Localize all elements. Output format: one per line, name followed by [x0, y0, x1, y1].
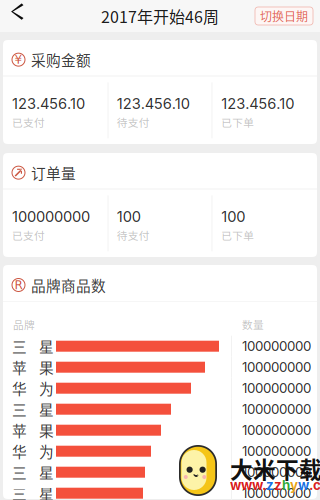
staticText: .com [309, 477, 320, 493]
button[interactable]: 切换日期 [255, 7, 313, 25]
staticText: www. [230, 477, 266, 493]
staticText: 100000000 [242, 359, 311, 375]
staticText: h [282, 477, 290, 493]
staticText: z [266, 477, 274, 493]
staticText: 已下单 [221, 114, 254, 130]
staticText: 星 [39, 462, 54, 483]
staticText: 123.456.10 [117, 95, 190, 112]
staticText: 100 [221, 208, 245, 225]
staticText: 100 [117, 208, 141, 225]
staticText: 采购金额 [31, 49, 91, 70]
staticText: y [290, 477, 298, 493]
staticText: 已支付 [12, 227, 45, 243]
staticText: 100000000 [242, 464, 311, 480]
staticText: 已下单 [221, 227, 254, 243]
staticText: 数量 [242, 317, 264, 332]
staticText: 100000000 [242, 485, 311, 500]
staticText: 2017年开始46周 [101, 4, 219, 28]
staticText: 已支付 [12, 114, 45, 130]
staticText: 华 [12, 378, 27, 399]
staticText: 三 [12, 399, 27, 420]
staticText: 品牌商品数 [31, 274, 106, 296]
staticText: ¥ [14, 53, 22, 67]
staticText: 100000000 [242, 401, 311, 417]
staticText: 果 [39, 357, 54, 378]
staticText: 星 [39, 483, 54, 500]
staticText: 100000000 [12, 208, 90, 225]
staticText: 订单量 [31, 162, 76, 183]
staticText: 三 [12, 462, 27, 483]
staticText: 三 [12, 336, 27, 357]
staticText: 大米下载站 [230, 452, 320, 485]
staticText: 切换日期 [260, 7, 308, 25]
staticText: 星 [39, 399, 54, 420]
staticText: z [274, 477, 282, 493]
staticText: 123.456.10 [221, 95, 294, 112]
staticText: 苹 [12, 420, 27, 441]
staticText: 星 [39, 336, 54, 357]
staticText: R [14, 278, 22, 292]
staticText: 待支付 [117, 114, 150, 130]
staticText: 100000000 [242, 443, 311, 459]
staticText: 123.456.10 [12, 95, 85, 112]
button[interactable]: Back [0, 0, 34, 32]
staticText: 果 [39, 420, 54, 441]
staticText: 待支付 [117, 227, 150, 243]
staticText: 苹 [12, 357, 27, 378]
staticText: 100000000 [242, 338, 311, 354]
staticText: 100000000 [242, 422, 311, 438]
staticText: w [298, 477, 309, 493]
staticText: 品牌 [13, 317, 35, 332]
staticText: 为 [39, 441, 54, 462]
staticText: 为 [39, 378, 54, 399]
staticText: 华 [12, 441, 27, 462]
staticText: 三 [12, 483, 27, 500]
staticText: 100000000 [242, 380, 311, 396]
